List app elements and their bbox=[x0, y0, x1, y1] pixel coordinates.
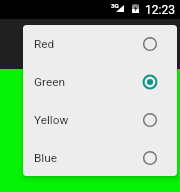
staticText: Red bbox=[34, 37, 55, 51]
staticText: 12:23 bbox=[145, 3, 175, 17]
button[interactable]: Green bbox=[23, 63, 177, 101]
staticText: Blue bbox=[34, 151, 57, 165]
button[interactable]: Blue bbox=[23, 139, 177, 176]
button[interactable]: Yellow bbox=[23, 101, 177, 139]
button[interactable]: Red bbox=[23, 25, 177, 63]
staticText: Green bbox=[34, 75, 65, 89]
staticText: Yellow bbox=[34, 113, 69, 127]
